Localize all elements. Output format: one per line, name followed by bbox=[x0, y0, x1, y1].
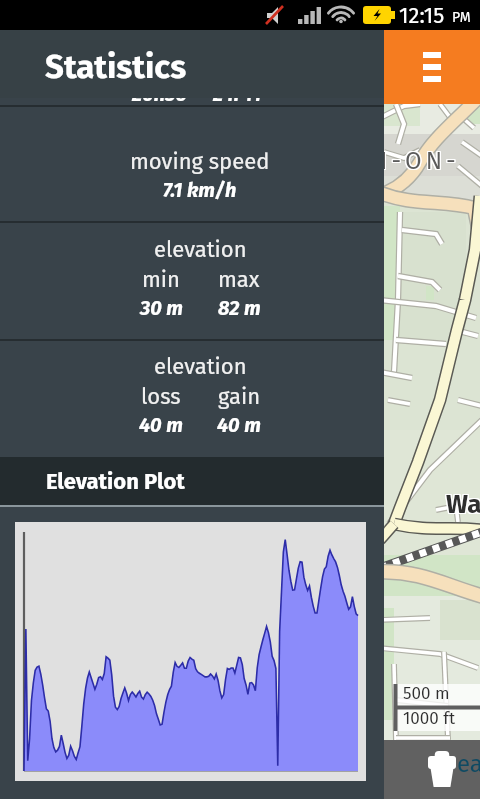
staticText: min bbox=[142, 266, 180, 292]
staticText: Wal bbox=[445, 489, 480, 520]
staticText: Wal bbox=[446, 488, 480, 519]
staticText: elevation bbox=[154, 236, 247, 262]
staticText: Wal bbox=[445, 490, 480, 521]
staticText: 20h56' bbox=[132, 82, 191, 106]
staticText: 1000 ft bbox=[403, 708, 456, 728]
staticText: gain bbox=[218, 383, 261, 409]
staticText: Elevation Plot bbox=[46, 468, 185, 494]
staticText: loss bbox=[141, 383, 181, 409]
staticText: N-ON- bbox=[384, 148, 459, 177]
staticText: max bbox=[218, 266, 260, 292]
staticText: Wal bbox=[445, 488, 480, 519]
staticText: Wal bbox=[447, 489, 480, 520]
button[interactable]: Menu bbox=[384, 30, 480, 104]
staticText: Wal bbox=[447, 490, 480, 521]
staticText: Wal bbox=[446, 489, 480, 520]
button[interactable] bbox=[0, 107, 384, 221]
staticText: elevation bbox=[154, 353, 247, 379]
staticText: eaf bbox=[457, 750, 480, 779]
staticText: PM bbox=[452, 9, 471, 26]
staticText: 7.1 km/h bbox=[163, 178, 237, 202]
staticText: N-ON- bbox=[384, 146, 460, 175]
staticText: 40 m bbox=[217, 413, 261, 437]
staticText: moving speed bbox=[130, 148, 270, 174]
button[interactable] bbox=[0, 341, 384, 457]
staticText: 2 h 11' bbox=[213, 82, 266, 106]
staticText: Wal bbox=[446, 490, 480, 521]
staticText: N-ON- bbox=[384, 146, 459, 175]
button[interactable]: Elevation Plot bbox=[0, 457, 384, 507]
staticText: N-ON- bbox=[384, 147, 461, 176]
staticText: N-ON- bbox=[384, 148, 461, 177]
staticText: N-ON- bbox=[384, 146, 461, 175]
button[interactable] bbox=[0, 223, 384, 339]
staticText: Statistics bbox=[45, 47, 187, 87]
staticText: 500 m bbox=[403, 683, 450, 703]
staticText: N-ON- bbox=[384, 147, 459, 176]
staticText: N-ON- bbox=[384, 148, 460, 177]
button[interactable]: Delete bbox=[428, 751, 456, 787]
staticText: N-ON- bbox=[384, 147, 460, 176]
staticText: 30 m bbox=[140, 296, 183, 320]
staticText: 12:15 bbox=[399, 2, 445, 28]
staticText: Wal bbox=[447, 488, 480, 519]
staticText: 40 m bbox=[139, 413, 183, 437]
staticText: 82 m bbox=[218, 296, 261, 320]
